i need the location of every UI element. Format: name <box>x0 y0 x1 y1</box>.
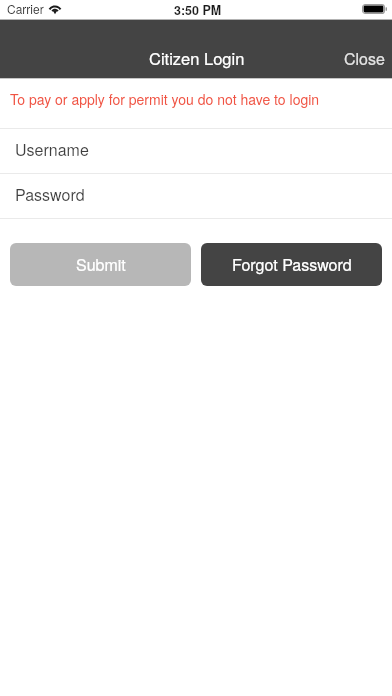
staticText: Close <box>344 47 385 70</box>
staticText: Password <box>15 183 85 206</box>
button[interactable]: Close <box>330 39 392 78</box>
other: Wi-Fi signal <box>48 3 62 13</box>
button[interactable]: Username <box>0 129 392 173</box>
staticText: To pay or apply for permit you do not ha… <box>10 89 320 109</box>
button[interactable]: Submit <box>10 243 191 286</box>
staticText: Submit <box>76 253 126 276</box>
staticText: 3:50 PM <box>174 1 222 19</box>
button[interactable]: Forgot Password <box>201 243 382 286</box>
staticText: Carrier <box>7 0 44 17</box>
other: Battery full <box>362 4 387 14</box>
staticText: Citizen Login <box>149 46 245 70</box>
staticText: Username <box>15 138 89 161</box>
button[interactable]: Password <box>0 174 392 218</box>
staticText: Forgot Password <box>232 253 352 276</box>
